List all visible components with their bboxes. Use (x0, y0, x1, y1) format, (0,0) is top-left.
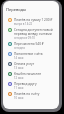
staticText: Оплата услуг (14, 62, 35, 66)
staticText: Пополнение счёта (14, 52, 43, 56)
staticText: 11 мая (14, 86, 24, 90)
staticText: Перевод другу (14, 82, 37, 86)
staticText: Переводы (6, 7, 27, 12)
staticText: 14 мая (14, 56, 24, 60)
staticText: 12 мая (14, 76, 24, 80)
staticText: Платёж по счёту (14, 92, 40, 96)
staticText: сегодня в 09:10 (14, 36, 35, 40)
button[interactable]: Сегодня доступен новый перевод между сче… (3, 27, 59, 41)
staticText: 13 мая (14, 66, 24, 70)
staticText: Платёж на сумму 1 200 ₽ (14, 18, 53, 22)
button[interactable]: Кэшбэк начислен (3, 71, 59, 81)
button[interactable]: Платёж на сумму 1 200 ₽ (3, 17, 59, 27)
staticText: Кэшбэк начислен (14, 72, 42, 76)
button[interactable]: Пополнение счёта (3, 51, 59, 61)
button[interactable]: Перечислено 540 ₽ (3, 41, 59, 51)
button[interactable]: Платёж по счёту (3, 91, 59, 101)
button[interactable]: Перевод другу (3, 81, 59, 91)
staticText: 10 мая (14, 96, 24, 100)
staticText: вчера в 14:22 (14, 22, 33, 26)
staticText: Перечислено 540 ₽ (14, 42, 44, 46)
staticText: сегодня (14, 46, 25, 50)
staticText: Сегодня доступен новый перевод между сче… (14, 28, 56, 36)
button[interactable]: Оплата услуг (3, 61, 59, 71)
